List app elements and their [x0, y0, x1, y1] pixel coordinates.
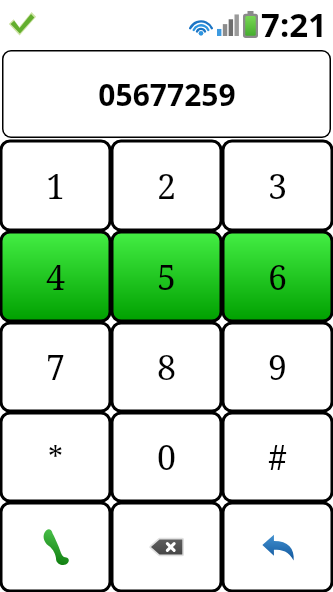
button[interactable]: Call — [1, 503, 110, 591]
button[interactable]: 3 — [223, 141, 332, 230]
button[interactable]: 2 — [112, 141, 221, 230]
staticText: 7 — [46, 344, 66, 390]
staticText: * — [48, 437, 63, 478]
staticText: 8 — [157, 344, 177, 390]
staticText: 05677259 — [98, 74, 236, 115]
staticText: # — [268, 434, 288, 480]
staticText: 9 — [268, 344, 288, 390]
staticText: 4 — [46, 254, 66, 300]
button[interactable]: Back — [223, 503, 332, 591]
button[interactable]: 7 — [1, 323, 110, 411]
button[interactable]: Backspace — [112, 503, 221, 591]
button[interactable]: 05677259 — [2, 50, 331, 138]
button[interactable]: 9 — [223, 323, 332, 411]
staticText: 2 — [157, 163, 177, 209]
staticText: 5 — [157, 254, 177, 300]
staticText: 6 — [268, 254, 288, 300]
button[interactable]: * — [1, 413, 110, 501]
button[interactable]: 5 — [112, 232, 221, 321]
button[interactable]: 6 — [223, 232, 332, 321]
staticText: 7:21 — [261, 2, 327, 47]
staticText: 0 — [157, 434, 177, 480]
button[interactable]: 8 — [112, 323, 221, 411]
other: Connected — [7, 9, 37, 39]
button[interactable]: 4 — [1, 232, 110, 321]
staticText: 1 — [46, 163, 66, 209]
button[interactable]: 0 — [112, 413, 221, 501]
button[interactable]: # — [223, 413, 332, 501]
staticText: 3 — [268, 163, 288, 209]
button[interactable]: 1 — [1, 141, 110, 230]
